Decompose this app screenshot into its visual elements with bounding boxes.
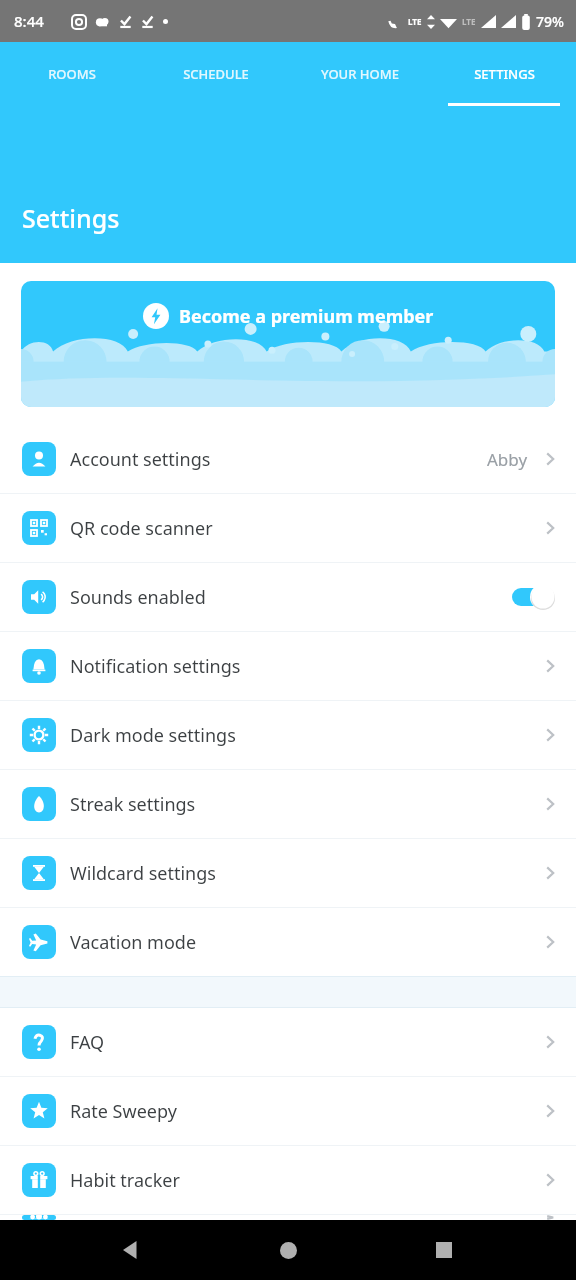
button[interactable]: Dark mode settings bbox=[0, 701, 576, 769]
staticText: ROOMS bbox=[48, 65, 96, 83]
button[interactable]: Habit tracker bbox=[0, 1146, 576, 1214]
button[interactable]: ROOMS bbox=[0, 42, 144, 106]
staticText: Settings bbox=[22, 201, 120, 235]
staticText: Account settings bbox=[70, 447, 487, 472]
button[interactable]: Recent apps bbox=[420, 1226, 468, 1274]
button[interactable]: Streak settings bbox=[0, 770, 576, 838]
staticText: Habit tracker bbox=[70, 1168, 540, 1193]
staticText: Become a premium member bbox=[179, 304, 434, 329]
staticText: Vacation mode bbox=[70, 930, 540, 955]
staticText: LTE bbox=[462, 16, 476, 27]
button[interactable]: Notification settings bbox=[0, 632, 576, 700]
button[interactable]: SETTINGS bbox=[432, 42, 576, 106]
button[interactable]: Vacation mode bbox=[0, 908, 576, 976]
staticText: Rate Sweepy bbox=[70, 1099, 540, 1124]
staticText: Streak settings bbox=[70, 792, 540, 817]
button[interactable]: SCHEDULE bbox=[144, 42, 288, 106]
button[interactable]: Invite your friends bbox=[0, 1215, 576, 1220]
button[interactable]: Become a premium member bbox=[21, 281, 555, 407]
staticText: Sounds enabled bbox=[70, 585, 508, 610]
button[interactable]: Home bbox=[264, 1226, 312, 1274]
staticText: QR code scanner bbox=[70, 516, 540, 541]
staticText: 8:44 bbox=[14, 11, 44, 31]
button[interactable]: Sounds enabled bbox=[0, 563, 576, 631]
staticText: Notification settings bbox=[70, 654, 540, 679]
staticText: Abby bbox=[487, 448, 528, 471]
staticText: Wildcard settings bbox=[70, 861, 540, 886]
staticText: SETTINGS bbox=[474, 65, 535, 83]
staticText: 79% bbox=[536, 12, 564, 31]
staticText: FAQ bbox=[70, 1030, 540, 1055]
staticText: LTE bbox=[408, 16, 422, 27]
button[interactable]: YOUR HOME bbox=[288, 42, 432, 106]
staticText: YOUR HOME bbox=[321, 65, 399, 83]
button[interactable]: Wildcard settings bbox=[0, 839, 576, 907]
button[interactable]: Rate Sweepy bbox=[0, 1077, 576, 1145]
staticText: Dark mode settings bbox=[70, 723, 540, 748]
button[interactable]: FAQ bbox=[0, 1008, 576, 1076]
button[interactable]: Account settings bbox=[0, 425, 576, 493]
button[interactable]: QR code scanner bbox=[0, 494, 576, 562]
staticText: SCHEDULE bbox=[183, 65, 249, 83]
button[interactable]: Back bbox=[108, 1226, 156, 1274]
